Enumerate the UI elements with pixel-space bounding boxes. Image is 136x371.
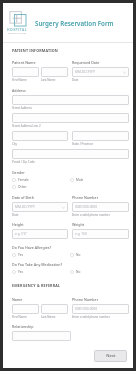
staticText: State / Province [72, 142, 94, 146]
button[interactable] [41, 304, 68, 314]
button[interactable] [12, 131, 68, 141]
staticText: (000) 000-0000 [75, 205, 126, 209]
staticText: Street Address Line 2 [12, 124, 41, 128]
staticText: First Name [12, 78, 27, 82]
staticText: PATIENT INFORMATION [12, 48, 58, 53]
staticText: Other [18, 185, 27, 189]
staticText: MM-DD-YYYY [75, 70, 123, 74]
staticText: Height [12, 222, 24, 227]
staticText: Female [18, 178, 29, 182]
button[interactable] [12, 149, 129, 159]
staticText: City [12, 142, 18, 146]
staticText: (000) 000-0000 [75, 307, 126, 311]
staticText: Enter a valid phone number [72, 315, 110, 319]
button[interactable] [12, 67, 39, 77]
button[interactable]: Male [70, 178, 129, 182]
staticText: Address [12, 88, 26, 93]
staticText: Do You Have Allergies? [12, 245, 52, 250]
button[interactable]: Yes [12, 270, 70, 274]
staticText: No [76, 270, 81, 274]
staticText: Phone Number [72, 195, 99, 200]
staticText: Street Address [12, 106, 32, 110]
button[interactable]: Other [12, 185, 70, 189]
staticText: Date [72, 78, 79, 82]
button[interactable]: Yes [12, 253, 70, 257]
staticText: MM-DD-YYYY [15, 205, 62, 209]
button[interactable] [12, 304, 39, 314]
staticText: Do You Take Any Medication? [12, 262, 63, 267]
button[interactable]: MM-DD-YYYY [72, 67, 129, 77]
staticText: Name [12, 297, 23, 302]
staticText: Last Name [41, 78, 56, 82]
staticText: Phone Number [72, 297, 99, 302]
button[interactable]: (000) 000-0000 [72, 304, 129, 314]
staticText: Last Name [41, 315, 56, 319]
staticText: Yes [18, 253, 23, 257]
button[interactable]: MM-DD-YYYY [12, 202, 68, 212]
button[interactable] [72, 131, 129, 141]
staticText: Surgery Reservation Form [35, 19, 114, 27]
button[interactable]: Female [12, 178, 70, 182]
staticText: Date [12, 213, 19, 217]
button[interactable]: e.g. 150 [72, 229, 129, 239]
staticText: Date of Birth [12, 195, 34, 200]
staticText: Yes [18, 270, 23, 274]
button[interactable]: No [70, 270, 129, 274]
button[interactable] [12, 95, 129, 105]
staticText: Enter a valid phone number [72, 213, 110, 217]
button[interactable] [12, 331, 71, 341]
button[interactable] [12, 113, 129, 123]
staticText: No [76, 253, 81, 257]
button[interactable]: Next [94, 350, 127, 362]
staticText: Gender [12, 170, 25, 175]
button[interactable]: (000) 000-0000 [72, 202, 129, 212]
staticText: HOSPITAL [7, 27, 28, 32]
staticText: Relationship [12, 324, 34, 329]
staticText: Next [106, 353, 116, 359]
staticText: First Name [12, 315, 27, 319]
staticText: Requested Date [72, 60, 100, 65]
staticText: EMERGENCY & REFERRAL [12, 283, 61, 288]
button[interactable]: No [70, 253, 129, 257]
staticText: Postal / Zip Code [12, 160, 35, 164]
button[interactable] [41, 67, 68, 77]
staticText: e.g. 150 [75, 232, 126, 236]
button[interactable]: e.g. 5'6" [12, 229, 68, 239]
staticText: Patient Name [12, 60, 36, 65]
staticText: Male [76, 178, 84, 182]
staticText: MEDICAL CENTER [8, 32, 27, 35]
staticText: e.g. 5'6" [15, 232, 65, 236]
staticText: Weight [72, 222, 85, 227]
